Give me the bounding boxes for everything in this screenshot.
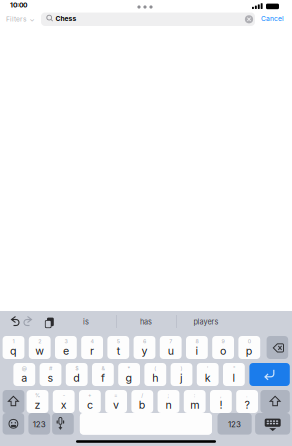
button[interactable]: Hide keyboard — [0, 0, 292, 446]
staticText: 1 — [12, 338, 14, 344]
staticText: , — [220, 392, 222, 398]
button[interactable]: Delete — [0, 0, 292, 446]
button[interactable]: Return — [0, 0, 292, 446]
staticText: c — [87, 398, 93, 411]
staticText: i — [195, 344, 198, 357]
staticText: ' — [207, 365, 209, 371]
staticText: m — [190, 398, 199, 411]
staticText: a — [21, 371, 27, 384]
button[interactable]: 0 — [0, 0, 292, 446]
staticText: 6 — [143, 338, 146, 344]
staticText: j — [180, 371, 183, 384]
button[interactable]: Clear text — [0, 0, 292, 446]
staticText: h — [152, 371, 158, 384]
button[interactable]: = — [0, 0, 292, 446]
button[interactable]: - — [0, 0, 292, 446]
button[interactable]: 5 — [0, 0, 292, 446]
button[interactable]: Filters — [0, 0, 292, 446]
staticText: u — [168, 344, 174, 357]
staticText: & — [101, 365, 104, 371]
button[interactable]: ; — [0, 0, 292, 446]
button[interactable]: " — [0, 0, 292, 446]
button[interactable]: 123 — [0, 0, 292, 446]
staticText: 123 — [33, 420, 46, 429]
button[interactable]: Shift — [0, 0, 292, 446]
staticText: " — [233, 365, 235, 371]
staticText: 8 — [195, 338, 198, 344]
staticText: * — [128, 365, 131, 371]
staticText: 2 — [38, 338, 41, 344]
staticText: ? — [245, 398, 250, 411]
staticText: Cancel — [261, 14, 284, 23]
button[interactable]: . — [0, 0, 292, 446]
staticText: t — [117, 344, 120, 357]
button[interactable]: 1 — [0, 0, 292, 446]
staticText: ⌄ — [29, 15, 34, 23]
staticText: w — [35, 344, 44, 357]
button[interactable]: Shift — [0, 0, 292, 446]
staticText: o — [220, 344, 226, 357]
button[interactable]: @ — [0, 0, 292, 446]
button[interactable]: & — [0, 0, 292, 446]
staticText: p — [246, 344, 253, 357]
button[interactable]: % — [0, 0, 292, 446]
button[interactable]: 9 — [0, 0, 292, 446]
staticText: + — [88, 392, 92, 398]
button[interactable]: Cancel — [0, 0, 292, 446]
button[interactable]: 6 — [0, 0, 292, 446]
button[interactable]: ) — [0, 0, 292, 446]
staticText: 5 — [117, 338, 120, 344]
button[interactable]: ' — [0, 0, 292, 446]
staticText: d — [73, 371, 80, 384]
staticText: f — [101, 371, 105, 384]
staticText: @ — [22, 365, 27, 371]
staticText: g — [126, 371, 133, 384]
button[interactable]: 2 — [0, 0, 292, 446]
staticText: r — [90, 344, 94, 357]
staticText: b — [139, 398, 146, 411]
staticText: is — [83, 317, 89, 326]
button[interactable]: + — [0, 0, 292, 446]
button[interactable]: / — [0, 0, 292, 446]
staticText: y — [141, 344, 147, 357]
button[interactable]: Space — [0, 0, 292, 446]
button[interactable]: Dictate — [0, 0, 292, 446]
staticText: # — [49, 365, 52, 371]
staticText: 4 — [91, 338, 94, 344]
staticText: / — [141, 392, 143, 398]
button[interactable]: : — [0, 0, 292, 446]
button[interactable]: * — [0, 0, 292, 446]
staticText: q — [10, 344, 17, 357]
staticText: s — [47, 371, 53, 384]
button[interactable]: 123 — [0, 0, 292, 446]
staticText: : — [194, 392, 196, 398]
staticText: ! — [219, 398, 222, 411]
button[interactable]: ( — [0, 0, 292, 446]
staticText: players — [193, 317, 218, 326]
staticText: v — [113, 398, 119, 411]
button[interactable]: , — [0, 0, 292, 446]
button[interactable]: 8 — [0, 0, 292, 446]
staticText: 123 — [228, 420, 241, 429]
button[interactable]: 3 — [0, 0, 292, 446]
button[interactable]: Emoji — [0, 0, 292, 446]
staticText: ) — [180, 365, 182, 371]
staticText: ; — [167, 392, 169, 398]
button[interactable]: 4 — [0, 0, 292, 446]
staticText: has — [140, 317, 152, 326]
staticText: % — [35, 392, 40, 398]
button[interactable]: 7 — [0, 0, 292, 446]
staticText: 0 — [248, 338, 251, 344]
staticText: k — [205, 371, 211, 384]
button[interactable]: # — [0, 0, 292, 446]
staticText: 10:00 — [10, 1, 27, 9]
staticText: 9 — [222, 338, 225, 344]
staticText: Chess — [55, 14, 76, 23]
staticText: = — [114, 392, 118, 398]
button[interactable]: $ — [0, 0, 292, 446]
staticText: ( — [154, 365, 156, 371]
staticText: 3 — [64, 338, 67, 344]
staticText: - — [63, 392, 65, 398]
staticText: n — [165, 398, 171, 411]
staticText: z — [34, 398, 40, 411]
